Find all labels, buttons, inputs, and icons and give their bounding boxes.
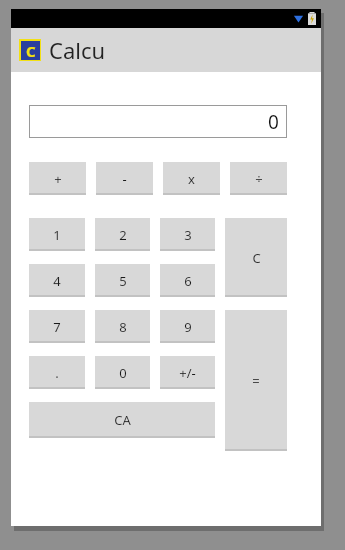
staticText: - [122,170,127,188]
button[interactable]: CA [29,402,215,438]
staticText: ÷ [255,170,263,188]
staticText: 7 [53,318,61,336]
button[interactable]: - [96,162,153,195]
staticText: C [26,41,36,60]
staticText: 0 [119,364,127,382]
staticText: . [55,364,59,382]
staticText: Calcu [49,35,106,65]
button[interactable]: 0 [95,356,150,389]
staticText: + [54,170,62,188]
button[interactable]: x [163,162,220,195]
button[interactable]: 0 [29,105,287,138]
staticText: = [252,372,260,390]
button[interactable]: 5 [95,264,150,297]
staticText: +/- [179,364,196,382]
staticText: 3 [184,226,192,244]
button[interactable]: 6 [160,264,215,297]
staticText: 2 [119,226,127,244]
staticText: 8 [119,318,127,336]
button[interactable]: +/- [160,356,215,389]
button[interactable]: C [225,218,287,297]
staticText: CA [114,411,131,429]
button[interactable]: 7 [29,310,85,343]
button[interactable]: + [29,162,86,195]
staticText: C [252,249,261,267]
staticText: 0 [268,109,279,135]
button[interactable]: 3 [160,218,215,251]
button[interactable]: = [225,310,287,451]
staticText: 5 [119,272,127,290]
button[interactable]: . [29,356,85,389]
button[interactable]: ÷ [230,162,287,195]
staticText: 4 [53,272,61,290]
staticText: x [188,170,195,188]
staticText: 6 [184,272,192,290]
button[interactable]: 9 [160,310,215,343]
button[interactable]: 8 [95,310,150,343]
button[interactable]: 4 [29,264,85,297]
staticText: 9 [184,318,192,336]
staticText: 1 [53,226,61,244]
button[interactable]: 1 [29,218,85,251]
button[interactable]: 2 [95,218,150,251]
